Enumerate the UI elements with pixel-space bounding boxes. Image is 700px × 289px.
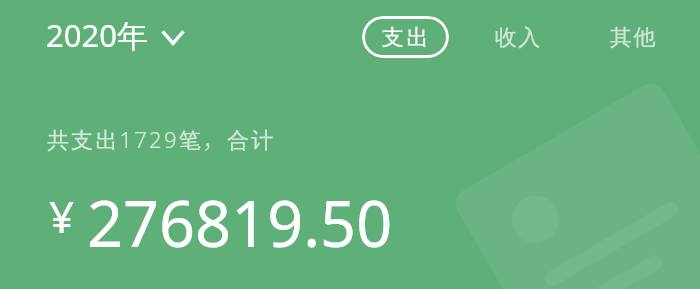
staticText: 2020年 — [46, 14, 148, 56]
staticText: 其他 — [609, 24, 656, 52]
button[interactable]: 其他 — [599, 18, 665, 57]
staticText: 共支出1729笔，合计 — [47, 122, 276, 154]
button[interactable]: 支出 — [362, 16, 449, 58]
staticText: 支出 — [382, 24, 431, 52]
button[interactable]: 收入 — [484, 18, 550, 57]
button[interactable]: 2020年 — [44, 12, 185, 58]
staticText: 收入 — [494, 24, 541, 52]
staticText: 276819.50 — [87, 180, 393, 266]
staticText: ¥ — [49, 186, 75, 246]
